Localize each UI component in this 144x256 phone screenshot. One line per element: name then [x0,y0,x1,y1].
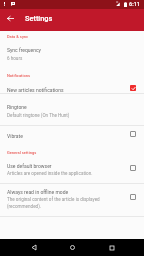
staticText: Use default browser [7,163,52,169]
staticText: Articles are opened inside the applicati… [7,171,93,176]
staticText: Sync frequency [7,47,41,53]
button[interactable]: Recent apps [104,239,120,256]
staticText: Vibrate [7,133,23,139]
button[interactable]: Use default browser [0,163,144,177]
staticText: Notifications [7,73,30,78]
button[interactable]: Back [26,239,42,256]
staticText: Settings [25,14,53,23]
button[interactable]: Always read in offline mode [0,189,144,209]
staticText: Data & sync [7,34,29,39]
button[interactable]: Sync frequency [0,47,144,61]
button[interactable]: Navigate up [0,9,20,27]
staticText: General settings [7,150,37,155]
button[interactable]: Vibrate [0,133,144,142]
button[interactable]: Home [64,239,80,256]
staticText: New articles notifications [7,87,64,93]
staticText: 6:11 [129,1,141,8]
staticText: Ringtone [7,104,27,110]
button[interactable]: Ringtone [0,104,144,122]
staticText: 6 hours [7,56,23,61]
staticText: Default ringtone (On The Hunt) [7,113,70,118]
staticText: Always read in offline mode [7,189,69,195]
button[interactable]: New articles notifications [0,87,144,94]
staticText: The original content of the article is d… [7,197,132,209]
